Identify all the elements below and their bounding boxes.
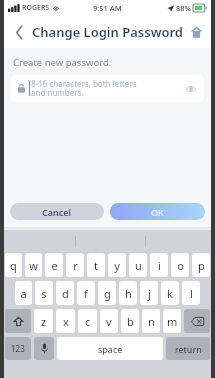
button[interactable]: h — [119, 281, 137, 305]
staticText: Change Login Password — [32, 23, 183, 41]
staticText: n — [148, 314, 155, 329]
button[interactable]: Backspace — [184, 309, 210, 333]
button[interactable]: f — [77, 281, 95, 305]
button[interactable]: 8-16 characters, both letters and number… — [11, 75, 204, 102]
staticText: r — [73, 258, 78, 273]
button[interactable]: space — [57, 337, 163, 360]
button[interactable]: v — [100, 309, 118, 333]
staticText: 8-16 characters, both letters and number… — [31, 78, 137, 99]
button[interactable]: e — [45, 253, 63, 277]
button[interactable]: OK — [110, 203, 205, 220]
staticText: u — [135, 258, 142, 273]
staticText: a — [20, 286, 27, 301]
button[interactable]: y — [108, 253, 126, 277]
button[interactable]: b — [121, 309, 139, 333]
staticText: t — [94, 258, 98, 273]
staticText: z — [41, 314, 47, 329]
staticText: v — [106, 314, 112, 329]
button[interactable]: s — [35, 281, 53, 305]
staticText: return — [175, 343, 202, 355]
staticText: x — [63, 314, 69, 329]
button[interactable]: d — [56, 281, 74, 305]
button[interactable]: q — [5, 253, 22, 277]
staticText: w — [29, 258, 38, 273]
staticText: l — [190, 286, 193, 301]
button[interactable]: a — [15, 281, 32, 305]
button[interactable]: u — [129, 253, 147, 277]
button[interactable]: Cancel — [10, 203, 104, 220]
button[interactable]: r — [66, 253, 84, 277]
button[interactable]: l — [182, 281, 200, 305]
button[interactable]: o — [171, 253, 189, 277]
button[interactable]: m — [163, 309, 181, 333]
staticText: h — [125, 286, 132, 301]
button[interactable]: Shift — [5, 309, 31, 333]
button[interactable]: Home — [185, 21, 207, 43]
button[interactable]: z — [34, 309, 53, 333]
staticText: 88% — [176, 3, 191, 13]
staticText: 9:51 AM — [93, 3, 122, 13]
staticText: q — [10, 258, 17, 273]
staticText: 123 — [11, 343, 25, 354]
button[interactable]: w — [25, 253, 42, 277]
button[interactable]: t — [87, 253, 105, 277]
button[interactable]: g — [98, 281, 116, 305]
staticText: s — [41, 286, 47, 301]
button[interactable]: p — [192, 253, 210, 277]
staticText: f — [84, 286, 88, 301]
button[interactable]: 123 — [5, 337, 31, 360]
staticText: b — [127, 314, 134, 329]
staticText: Create new password. — [13, 56, 112, 69]
staticText: ROGERS — [22, 3, 50, 13]
staticText: k — [167, 286, 173, 301]
button[interactable]: Show password — [182, 80, 200, 98]
button[interactable]: x — [56, 309, 75, 333]
staticText: g — [104, 286, 111, 301]
staticText: space — [98, 343, 123, 355]
staticText: e — [51, 258, 58, 273]
staticText: i — [158, 258, 161, 273]
staticText: y — [114, 258, 120, 273]
staticText: j — [148, 286, 151, 301]
button[interactable]: Back — [8, 21, 30, 43]
button[interactable]: n — [142, 309, 160, 333]
button[interactable]: i — [150, 253, 168, 277]
staticText: p — [198, 258, 205, 273]
staticText: m — [167, 314, 178, 329]
button[interactable]: j — [140, 281, 158, 305]
button[interactable]: Voice input — [34, 337, 54, 360]
staticText: Cancel — [42, 206, 72, 218]
staticText: OK — [151, 206, 164, 218]
button[interactable]: c — [78, 309, 97, 333]
staticText: c — [85, 314, 91, 329]
button[interactable]: k — [161, 281, 179, 305]
staticText: d — [62, 286, 69, 301]
button[interactable]: return — [166, 337, 210, 360]
staticText: o — [177, 258, 184, 273]
